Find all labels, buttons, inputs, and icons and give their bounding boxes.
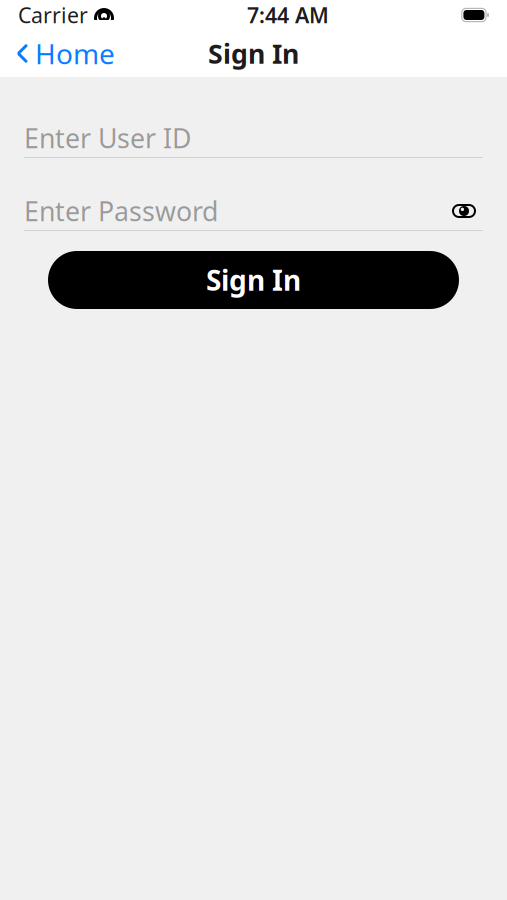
staticText: Sign In [206,261,301,299]
staticText: 7:44 AM [247,1,329,29]
staticText: Carrier [18,1,88,29]
staticText: Sign In [208,36,299,71]
staticText: Enter User ID [24,120,191,156]
button[interactable]: Home [4,29,127,78]
button[interactable]: Sign In [48,251,459,309]
button[interactable]: Show password [445,197,483,225]
staticText: Enter Password [24,193,218,229]
staticText: Home [35,35,115,72]
